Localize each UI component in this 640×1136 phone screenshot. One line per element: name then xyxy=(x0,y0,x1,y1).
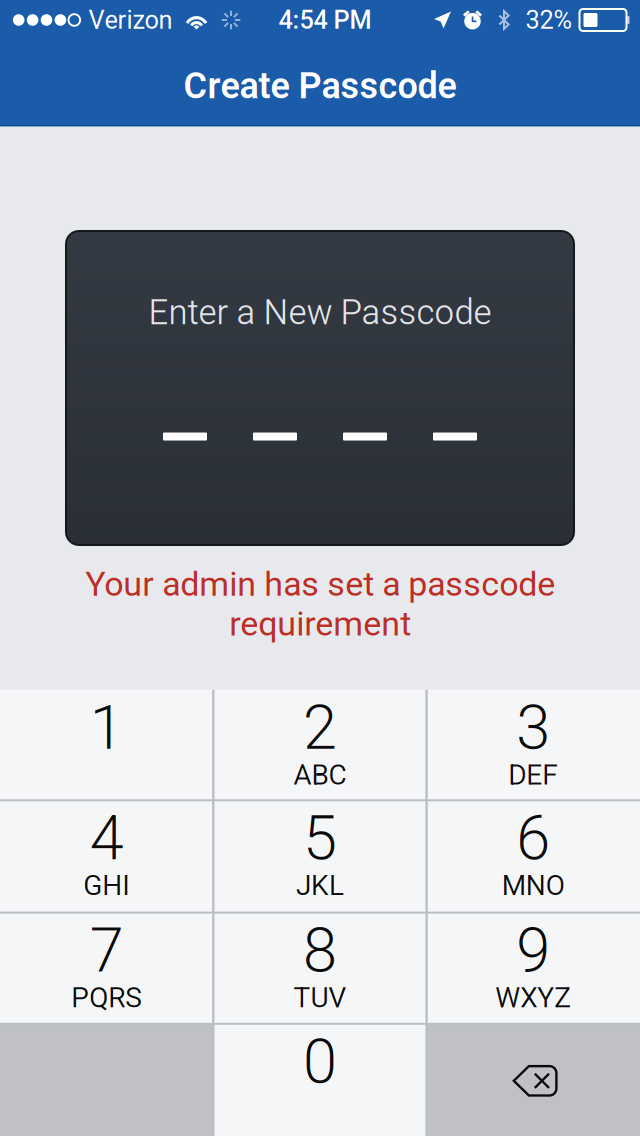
staticText: Verizon xyxy=(88,5,172,35)
staticText: JKL xyxy=(296,869,344,902)
staticText: 1 xyxy=(90,692,124,764)
staticText: ABC xyxy=(293,759,346,791)
button[interactable]: 4 xyxy=(0,800,213,913)
staticText: PQRS xyxy=(71,981,142,1014)
staticText: 5 xyxy=(303,802,337,874)
staticText: WXYZ xyxy=(495,981,571,1014)
button[interactable]: 5 xyxy=(213,800,427,913)
button[interactable]: 9 xyxy=(427,913,640,1024)
staticText: 4 xyxy=(90,802,124,874)
button[interactable]: 6 xyxy=(427,800,640,913)
staticText: 9 xyxy=(516,915,550,986)
button[interactable]: 0 xyxy=(213,1024,427,1136)
staticText: 4:54 PM xyxy=(278,5,371,35)
staticText: 2 xyxy=(303,692,337,764)
staticText: GHI xyxy=(83,869,130,902)
button[interactable]: 8 xyxy=(213,913,427,1024)
button[interactable]: 3 xyxy=(427,690,640,800)
staticText: DEF xyxy=(508,759,558,791)
button[interactable]: 2 xyxy=(213,690,427,800)
staticText: Create Passcode xyxy=(183,65,456,107)
button[interactable]: 7 xyxy=(0,913,213,1024)
staticText: Enter a New Passcode xyxy=(148,292,491,333)
staticText: TUV xyxy=(293,981,346,1014)
staticText: 32% xyxy=(525,5,572,35)
button[interactable]: 1 xyxy=(0,690,213,800)
staticText: Your admin has set a passcode requiremen… xyxy=(85,564,555,644)
staticText: 7 xyxy=(90,915,124,986)
staticText: 3 xyxy=(516,692,550,764)
staticText: 8 xyxy=(303,915,337,986)
button[interactable]: Delete xyxy=(426,1024,640,1136)
staticText: 0 xyxy=(303,1026,337,1098)
staticText: MNO xyxy=(502,869,565,902)
staticText: 6 xyxy=(516,802,550,874)
